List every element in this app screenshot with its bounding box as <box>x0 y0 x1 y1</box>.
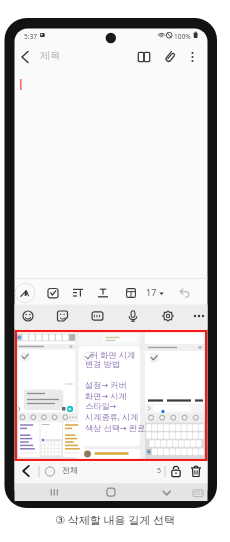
staticText: 설정→ 커버 <box>85 379 127 390</box>
staticText: 변경 방법 <box>85 358 120 369</box>
staticText: 17 <box>146 286 157 298</box>
staticText: 전체 <box>62 465 78 475</box>
staticText: 5:37 <box>24 32 38 41</box>
staticText: ③ 삭제할 내용 길게 선택 <box>55 512 176 527</box>
staticText: 시계종류, 시계 <box>85 411 139 422</box>
staticText: 커 화면 시계 <box>90 349 136 360</box>
staticText: 스타일→ <box>85 401 117 411</box>
staticText: 100% <box>174 32 191 41</box>
staticText: 제목 <box>40 49 60 62</box>
staticText: 색상 선택→ 완료 <box>85 422 146 433</box>
button[interactable]: 제목 <box>16 44 116 66</box>
staticText: 5 <box>157 466 162 476</box>
staticText: 화면→ 시계 <box>85 390 127 401</box>
